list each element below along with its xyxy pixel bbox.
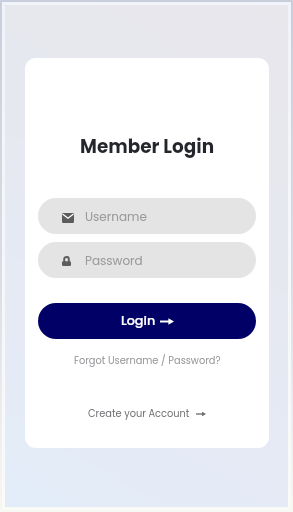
button[interactable]: Password — [38, 242, 256, 278]
button[interactable]: Email — [38, 198, 256, 234]
button[interactable]: Login — [38, 303, 256, 339]
button[interactable]: Create your Account — [88, 407, 206, 421]
button[interactable]: Forgot Username / Password? — [74, 354, 221, 368]
staticText: Username — [85, 208, 147, 225]
other: Password — [62, 256, 71, 266]
staticText: Create your Account — [88, 407, 190, 421]
staticText: Login — [121, 312, 156, 330]
staticText: Member Login — [80, 134, 215, 160]
staticText: Password — [85, 252, 143, 269]
other: Email — [62, 213, 74, 223]
